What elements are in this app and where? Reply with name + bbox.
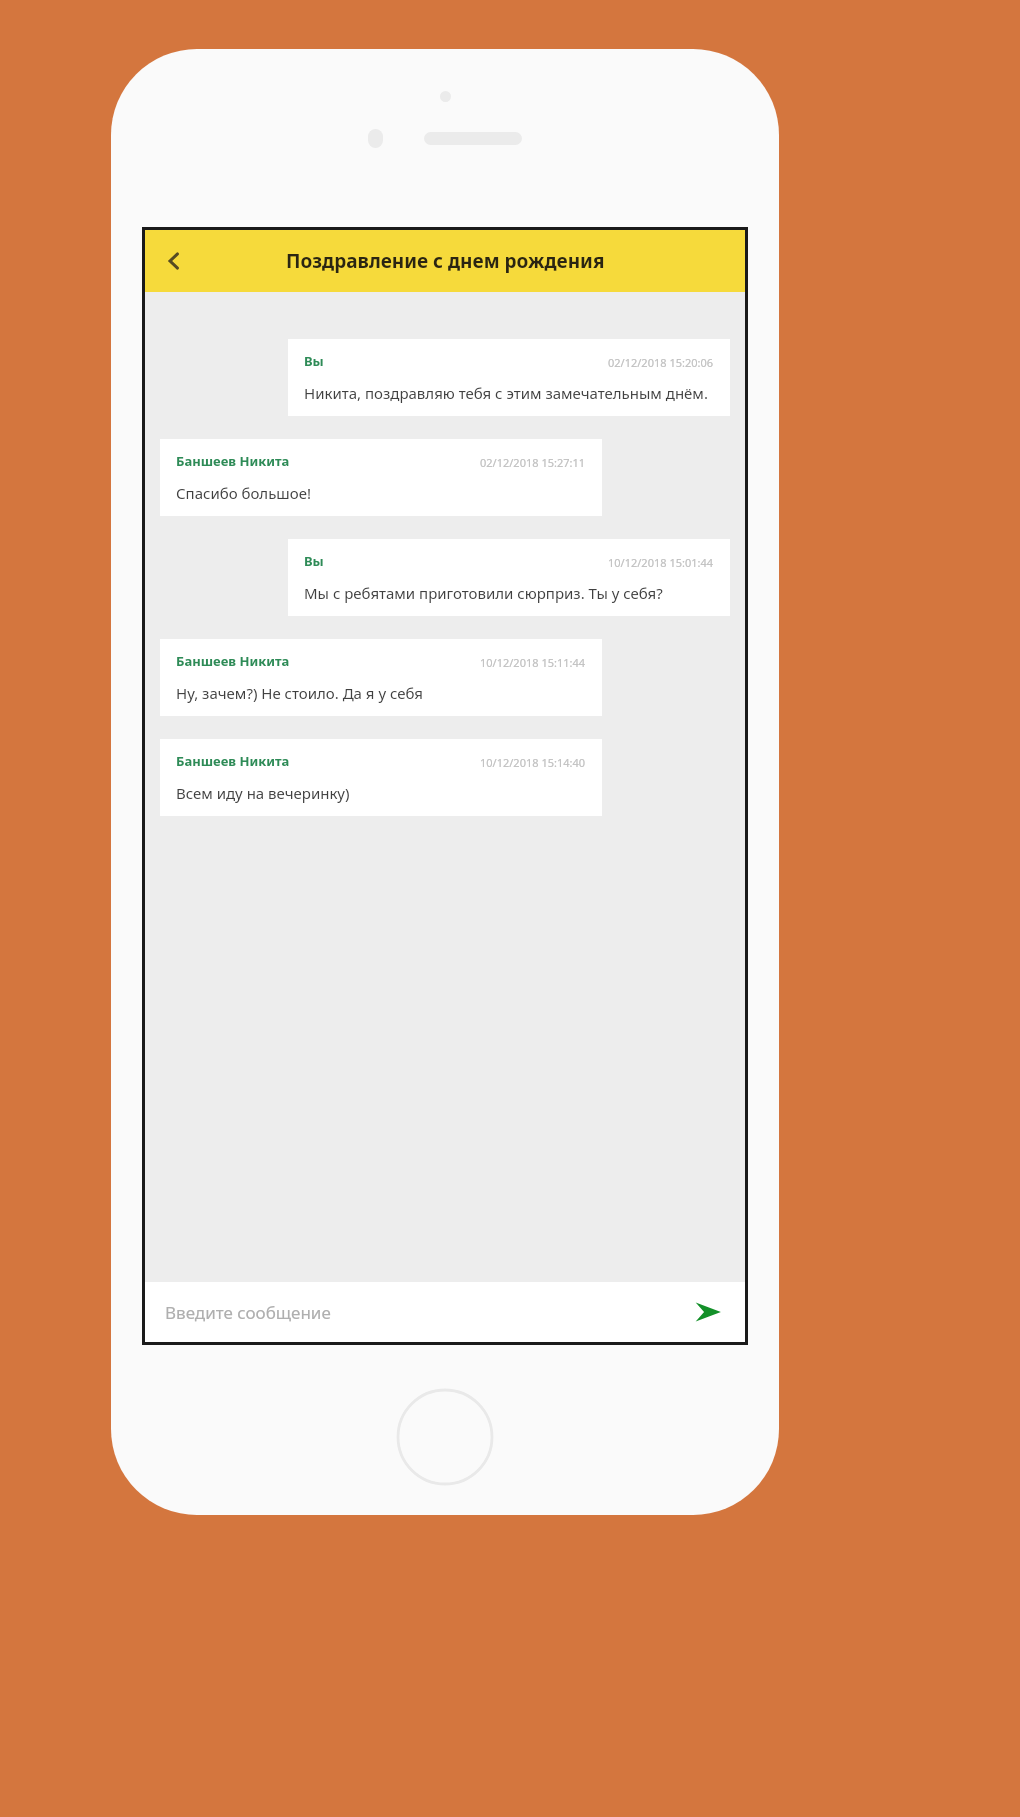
button[interactable]: Вы (288, 339, 730, 416)
staticText: Спасибо большое! (176, 483, 311, 503)
staticText: Всем иду на вечеринку) (176, 783, 350, 803)
button[interactable]: Back (145, 230, 203, 292)
staticText: Вы (304, 552, 324, 570)
button[interactable]: Баншеев Никита (160, 739, 602, 816)
staticText: Мы с ребятами приготовили сюрприз. Ты у … (304, 583, 663, 603)
staticText: Вы (304, 352, 324, 370)
button[interactable]: Send (685, 1289, 731, 1335)
button[interactable]: Введите сообщение (145, 1282, 745, 1342)
staticText: Баншеев Никита (176, 652, 290, 670)
staticText: Ну, зачем?) Не стоило. Да я у себя (176, 683, 423, 703)
staticText: Баншеев Никита (176, 752, 290, 770)
staticText: 02/12/2018 15:20:06 (608, 355, 714, 370)
staticText: 10/12/2018 15:01:44 (608, 555, 714, 570)
staticText: Поздравление с днем рождения (286, 248, 605, 274)
button[interactable]: Вы (288, 539, 730, 616)
staticText: Никита, поздравляю тебя с этим замечател… (304, 383, 708, 403)
staticText: Введите сообщение (165, 1301, 685, 1324)
button[interactable]: Баншеев Никита (160, 639, 602, 716)
staticText: 02/12/2018 15:27:11 (480, 455, 586, 470)
button[interactable]: Баншеев Никита (160, 439, 602, 516)
staticText: 10/12/2018 15:11:44 (480, 655, 586, 670)
staticText: 10/12/2018 15:14:40 (480, 755, 586, 770)
staticText: Баншеев Никита (176, 452, 290, 470)
